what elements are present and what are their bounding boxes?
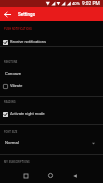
staticText: 9:02 PM	[82, 1, 100, 7]
staticText: Settings	[18, 12, 35, 17]
button[interactable]: Home	[44, 169, 57, 182]
staticText: FONT SIZE	[4, 131, 18, 134]
staticText: 40%	[72, 1, 80, 6]
staticText: MY SUBSCRIPTIONS	[4, 161, 30, 164]
button[interactable]: Recents	[19, 169, 32, 182]
staticText: Receive notifications	[10, 39, 46, 44]
staticText: Vibrate	[10, 83, 23, 88]
button[interactable]: Normal	[0, 138, 103, 147]
staticText: PUSH NOTIFICATIONS	[4, 28, 33, 31]
staticText: Concave	[5, 71, 22, 76]
staticText: READING	[4, 101, 16, 104]
button[interactable]: Concave	[0, 69, 103, 78]
staticText: Normal	[5, 140, 19, 145]
button[interactable]: Vibrate	[0, 80, 103, 90]
button[interactable]: Activate night mode	[0, 108, 103, 118]
button[interactable]: Back	[68, 169, 81, 182]
staticText: Activate night mode	[10, 111, 45, 116]
button[interactable]: Receive notifications	[0, 36, 103, 46]
staticText: RINGTONE	[4, 61, 18, 64]
button[interactable]: Back	[0, 7, 14, 21]
